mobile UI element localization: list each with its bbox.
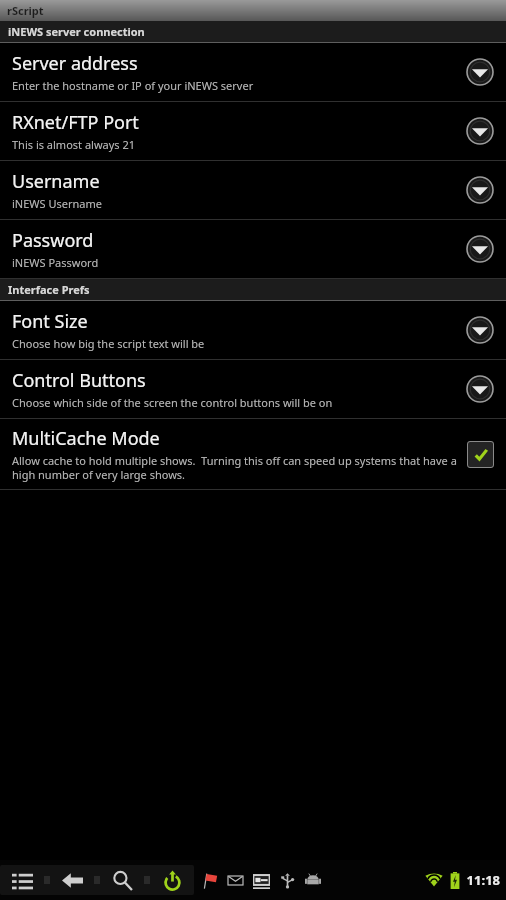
staticText: Choose which side of the screen the cont… [12,395,333,410]
button[interactable]: Search [100,865,144,895]
staticText: Allow cache to hold multiple shows. Turn… [12,453,457,482]
staticText: Username [12,169,100,194]
staticText: rScript [7,3,44,18]
button[interactable]: Recent apps [0,865,44,895]
button[interactable]: Back [50,865,94,895]
staticText: This is almost always 21 [12,137,136,152]
button[interactable]: 11:18 [425,871,506,889]
button[interactable]: Password [0,220,506,279]
staticText: Enter the hostname or IP of your iNEWS s… [12,78,254,93]
staticText: Interface Prefs [8,282,90,297]
button[interactable]: RXnet/FTP Port [0,102,506,161]
button[interactable]: Font Size [0,301,506,360]
button[interactable]: Control Buttons [0,360,506,419]
staticText: Password [12,228,94,253]
staticText: iNEWS Password [12,255,99,270]
button[interactable]: Power [150,865,194,895]
staticText: Control Buttons [12,368,146,393]
staticText: Font Size [12,309,88,334]
staticText: RXnet/FTP Port [12,110,139,135]
staticText: MultiCache Mode [12,426,160,451]
staticText: 11:18 [466,871,500,889]
button[interactable]: Username [0,161,506,220]
staticText: Choose how big the script text will be [12,336,205,351]
staticText: iNEWS Username [12,196,102,211]
button[interactable]: MultiCache Mode [0,419,506,490]
staticText: Server address [12,51,138,76]
button[interactable]: Server address [0,43,506,102]
staticText: iNEWS server connection [8,24,145,39]
